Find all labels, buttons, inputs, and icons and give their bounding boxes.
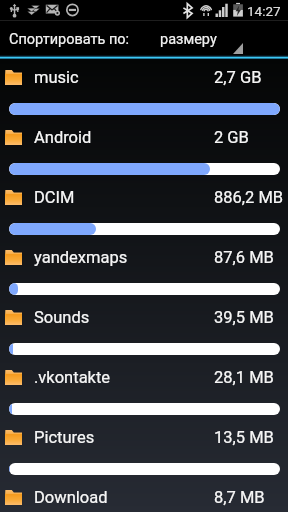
staticText: Pictures [34,428,95,447]
staticText: 2 GB [214,128,249,147]
button[interactable]: Android [0,118,288,178]
button[interactable]: DCIM [0,178,288,238]
staticText: 2,7 GB [214,68,262,87]
staticText: 87,6 MB [214,248,274,267]
button[interactable]: Download [0,478,288,512]
staticText: 886,2 MB [214,188,284,207]
button[interactable]: yandexmaps [0,238,288,298]
staticText: 39,5 MB [214,308,274,327]
staticText: Sounds [34,308,90,327]
staticText: размеру [160,31,217,48]
button[interactable]: .vkontakte [0,358,288,418]
staticText: .vkontakte [34,368,111,387]
staticText: DCIM [34,188,75,207]
staticText: 13,5 MB [214,428,274,447]
staticText: Спортировать по: [9,31,130,48]
button[interactable]: Сортировать по размеру [152,21,252,58]
staticText: 14:27 [247,3,281,19]
button[interactable]: Sounds [0,298,288,358]
staticText: Android [34,128,92,147]
staticText: music [34,68,79,87]
button[interactable]: music [0,58,288,118]
staticText: Download [34,488,108,507]
staticText: 8,7 MB [214,488,265,507]
staticText: 28,1 MB [214,368,274,387]
staticText: yandexmaps [34,248,128,267]
button[interactable]: Pictures [0,418,288,478]
